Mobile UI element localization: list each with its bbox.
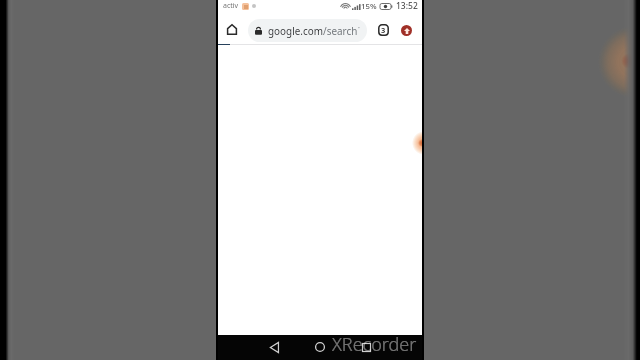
button[interactable]: Home bbox=[217, 14, 247, 44]
button[interactable]: Recents bbox=[356, 337, 377, 358]
button[interactable]: Back bbox=[263, 337, 286, 358]
staticText: activ bbox=[223, 1, 239, 11]
staticText: google.com bbox=[268, 24, 323, 37]
staticText: /search bbox=[323, 24, 358, 37]
staticText: 15% bbox=[361, 1, 377, 12]
staticText: ˙ bbox=[358, 24, 360, 37]
staticText: 3 bbox=[381, 25, 386, 35]
button[interactable]: Recording bbox=[395, 19, 417, 41]
staticText: XRecorder bbox=[332, 332, 417, 357]
staticText: 13:52 bbox=[396, 0, 418, 12]
button[interactable]: Home bbox=[309, 336, 331, 358]
button[interactable]: Tabs bbox=[372, 19, 394, 41]
other: Recorder bbox=[218, 45, 422, 335]
button[interactable]: google.com bbox=[248, 19, 367, 42]
